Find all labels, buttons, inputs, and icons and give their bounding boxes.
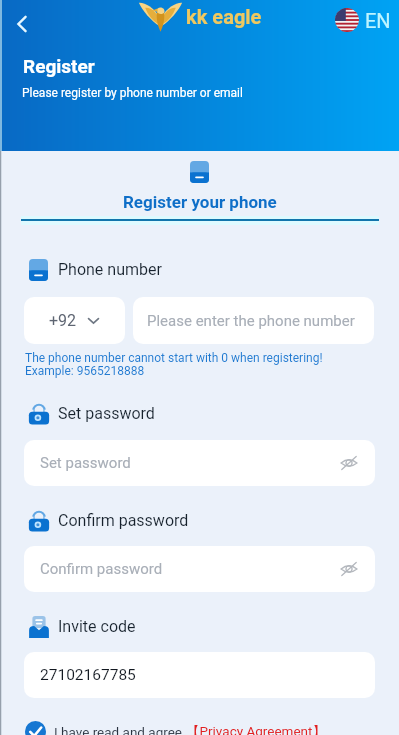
staticText: 【Privacy Agreement】	[186, 723, 326, 735]
button[interactable]: +92	[24, 297, 125, 344]
staticText: Set password	[40, 454, 131, 472]
staticText: Please enter the phone number	[147, 312, 355, 330]
staticText: kk eagle	[186, 5, 262, 28]
button[interactable]: I have read and agree	[25, 721, 326, 735]
button[interactable]: Please enter the phone number	[133, 297, 374, 344]
button[interactable]: Confirm password	[24, 546, 375, 592]
staticText: 27102167785	[40, 666, 136, 684]
staticText: Confirm password	[40, 560, 163, 578]
staticText: +92	[49, 311, 77, 330]
staticText: Example: 9565218888	[25, 364, 145, 378]
staticText: Invite code	[58, 617, 136, 636]
staticText: I have read and agree	[54, 724, 183, 735]
button[interactable]: Back	[4, 6, 40, 42]
staticText: Register your phone	[123, 192, 277, 212]
button[interactable]: EN	[335, 8, 391, 32]
staticText: Set password	[58, 404, 155, 423]
button[interactable]: Show password	[337, 557, 361, 581]
staticText: The phone number cannot start with 0 whe…	[25, 351, 323, 365]
staticText: Phone number	[58, 260, 162, 279]
button[interactable]: Set password	[24, 440, 375, 486]
staticText: Register	[23, 55, 95, 77]
staticText: EN	[365, 9, 391, 32]
staticText: Please register by phone number or email	[22, 86, 243, 100]
button[interactable]: Show password	[337, 451, 361, 475]
button[interactable]: 27102167785	[24, 652, 375, 698]
staticText: Confirm password	[58, 511, 189, 530]
